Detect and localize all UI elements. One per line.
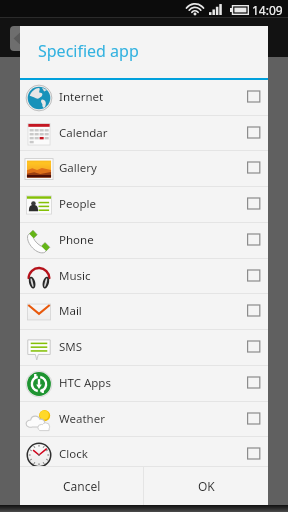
button[interactable]: OK — [144, 467, 268, 505]
button[interactable]: Cancel — [20, 467, 143, 505]
staticText: OK — [198, 478, 215, 494]
button[interactable]: Select SMS — [246, 340, 261, 354]
staticText: SMS — [59, 339, 83, 355]
button[interactable]: Clock — [20, 437, 268, 466]
button[interactable]: Gallery — [20, 151, 268, 186]
button[interactable]: People — [20, 187, 268, 222]
button[interactable]: Music — [20, 259, 268, 294]
button[interactable]: Select Music — [246, 269, 261, 283]
staticText: 14:09 — [252, 2, 283, 18]
button[interactable]: SMS — [20, 330, 268, 365]
staticText: Gallery — [59, 160, 97, 176]
staticText: Weather — [59, 411, 105, 427]
button[interactable]: Select Phone — [246, 233, 261, 247]
staticText: Music — [59, 268, 91, 284]
button[interactable]: HTC Apps — [20, 366, 268, 401]
button[interactable]: Phone — [20, 223, 268, 258]
button[interactable]: Select Internet — [246, 90, 261, 104]
staticText: HTC Apps — [59, 375, 111, 391]
button[interactable]: Select Weather — [246, 412, 261, 426]
button[interactable]: Calendar — [20, 116, 268, 151]
button[interactable]: Select HTC Apps — [246, 376, 261, 390]
button[interactable]: Select Clock — [246, 447, 261, 461]
staticText: Specified app — [38, 40, 139, 62]
staticText: People — [59, 196, 96, 212]
staticText: Mail — [59, 303, 82, 319]
staticText: Internet — [59, 89, 104, 105]
staticText: Cancel — [63, 478, 101, 494]
button[interactable]: Mail — [20, 294, 268, 329]
button[interactable]: Select Mail — [246, 304, 261, 318]
staticText: Clock — [59, 446, 88, 462]
staticText: Calendar — [59, 125, 108, 141]
button[interactable]: Internet — [20, 80, 268, 115]
button[interactable]: Back — [10, 26, 26, 51]
button[interactable]: Select Calendar — [246, 126, 261, 140]
button[interactable]: Select Gallery — [246, 161, 261, 175]
staticText: Phone — [59, 232, 94, 248]
button[interactable]: Weather — [20, 402, 268, 437]
button[interactable]: Select People — [246, 197, 261, 211]
